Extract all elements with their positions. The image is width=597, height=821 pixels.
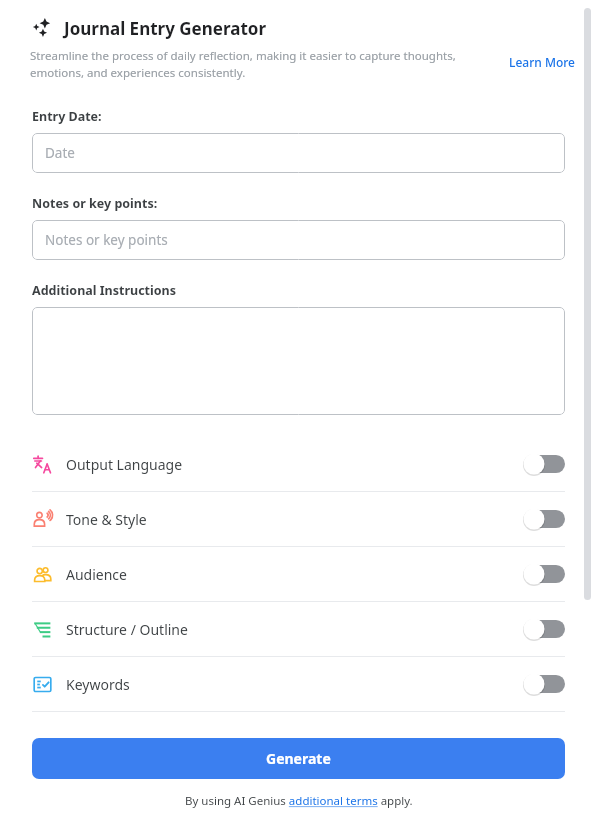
staticText: By using AI Genius additional terms appl… xyxy=(185,793,413,809)
staticText: Notes or key points xyxy=(45,231,168,249)
button[interactable]: Date xyxy=(32,133,565,173)
staticText: Tone & Style xyxy=(66,510,147,529)
other: Toggle xyxy=(523,673,565,695)
button[interactable]: Tone & Style xyxy=(0,492,597,546)
button[interactable]: Keywords xyxy=(0,657,597,711)
button[interactable]: Learn More xyxy=(507,52,577,72)
other: Toggle xyxy=(523,618,565,640)
staticText: Generate xyxy=(266,749,331,768)
staticText: Date xyxy=(45,144,75,162)
button[interactable] xyxy=(32,307,565,415)
staticText: Structure / Outline xyxy=(66,620,188,639)
staticText: Learn More xyxy=(509,54,575,70)
staticText: Journal Entry Generator xyxy=(64,17,266,40)
staticText: Notes or key points: xyxy=(32,195,158,212)
button[interactable]: Output Language xyxy=(0,437,597,491)
button[interactable]: Generate xyxy=(32,738,565,779)
staticText: Streamline the process of daily reflecti… xyxy=(30,48,507,80)
staticText: Audience xyxy=(66,565,127,584)
other: Toggle xyxy=(523,508,565,530)
other: Toggle xyxy=(523,563,565,585)
button[interactable]: Notes or key points xyxy=(32,220,565,260)
staticText: Output Language xyxy=(66,455,183,474)
staticText: Entry Date: xyxy=(32,108,102,125)
button[interactable]: Structure / Outline xyxy=(0,602,597,656)
staticText: Additional Instructions xyxy=(32,282,176,299)
other: Toggle xyxy=(523,453,565,475)
staticText: Keywords xyxy=(66,675,130,694)
button[interactable]: Audience xyxy=(0,547,597,601)
